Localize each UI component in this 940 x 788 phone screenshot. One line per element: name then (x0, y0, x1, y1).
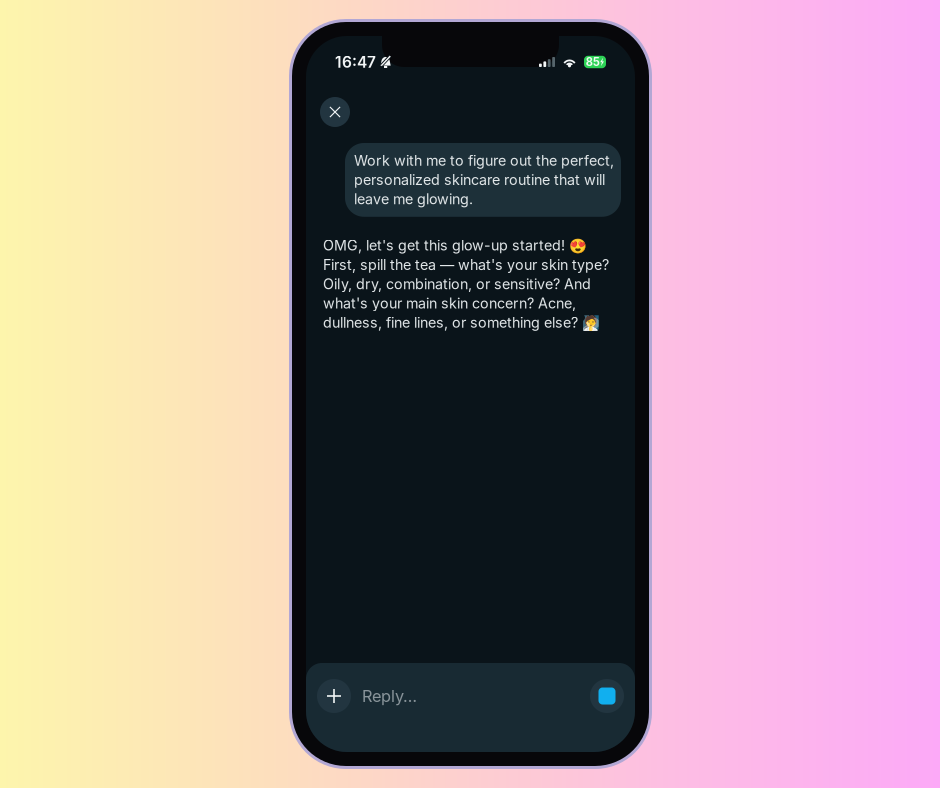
staticText: Reply… (362, 686, 417, 706)
staticText: OMG, let's get this glow-up started! 😍 F… (323, 237, 609, 331)
button[interactable]: Add attachment (317, 679, 351, 713)
staticText: Work with me to figure out the perfect, … (354, 152, 614, 208)
staticText: 16:47 (335, 53, 376, 71)
button[interactable]: Close (320, 97, 350, 127)
button[interactable]: Stop generating (590, 679, 624, 713)
staticText: 85 (586, 55, 600, 69)
